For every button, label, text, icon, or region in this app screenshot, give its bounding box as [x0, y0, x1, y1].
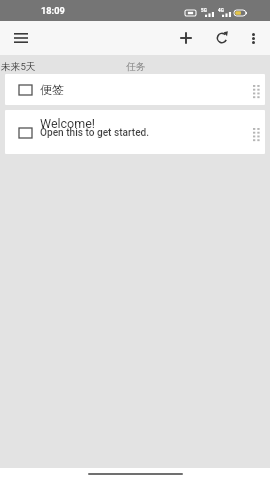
button[interactable]: Welcome!	[5, 110, 265, 154]
staticText: 4G	[218, 8, 224, 13]
staticText: 任务	[126, 61, 146, 73]
button[interactable]: Refresh	[209, 25, 235, 51]
button[interactable]: 任务	[110, 57, 162, 76]
staticText: 18:09	[41, 5, 65, 16]
button[interactable]: Menu	[8, 25, 34, 51]
staticText: Welcome!	[40, 116, 96, 131]
button[interactable]: More options	[241, 26, 266, 51]
button[interactable]: Add	[173, 25, 199, 51]
staticText: 便签	[40, 82, 64, 97]
button[interactable]: 便签	[5, 74, 265, 105]
staticText: Open this to get started.	[40, 127, 150, 139]
staticText: 5G	[201, 8, 207, 13]
staticText: 未来5天	[1, 61, 36, 73]
button[interactable]: 未来5天	[0, 57, 46, 76]
